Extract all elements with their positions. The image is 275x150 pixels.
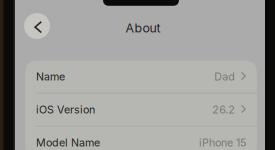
staticText: Model Name [36,136,100,149]
button[interactable]: Back [24,13,50,39]
staticText: 26.2 [212,103,235,116]
button[interactable]: Model Name [25,126,257,150]
staticText: Name [36,70,65,83]
staticText: Dad [214,70,235,83]
staticText: iOS Version [36,103,95,116]
button[interactable]: Name [25,60,257,93]
staticText: About [125,20,160,35]
button[interactable]: iOS Version [25,93,257,126]
staticText: iPhone 15 [199,136,246,149]
